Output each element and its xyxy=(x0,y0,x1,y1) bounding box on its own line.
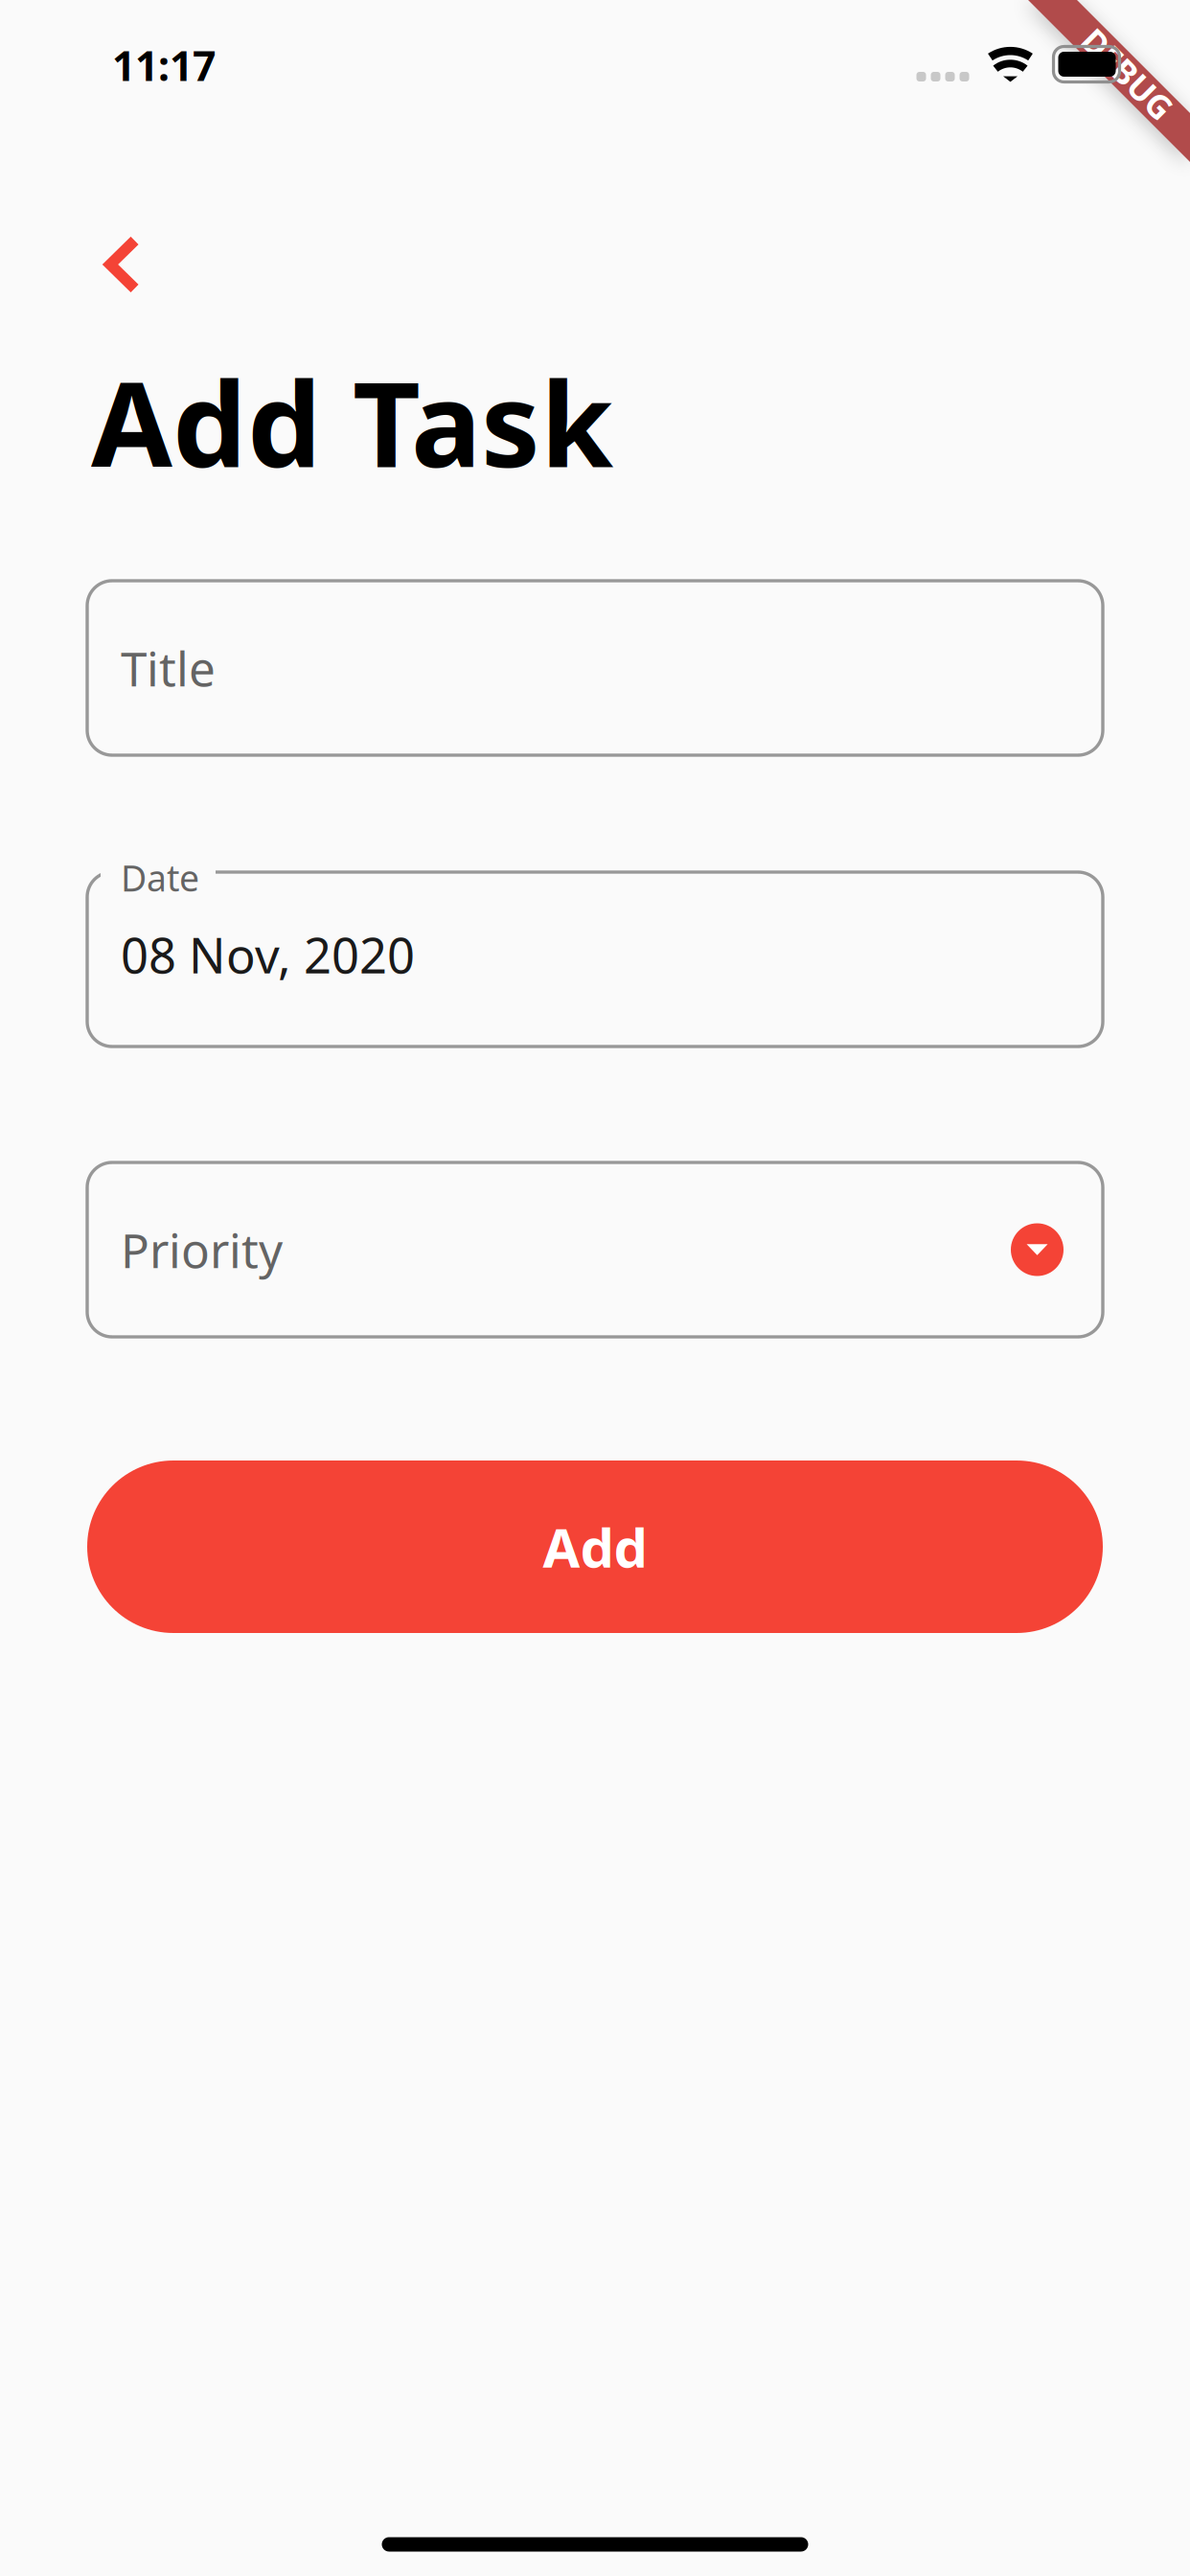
button[interactable]: 08 Nov, 2020 xyxy=(87,872,1103,1046)
staticText: DEBUG xyxy=(1071,52,1184,96)
button[interactable]: Priority xyxy=(87,1162,1103,1337)
button[interactable]: Title xyxy=(87,581,1103,755)
staticText: Add Task xyxy=(91,344,613,500)
staticText: 11:17 xyxy=(112,38,216,92)
staticText: 08 Nov, 2020 xyxy=(121,922,415,987)
staticText: Title xyxy=(121,637,216,699)
staticText: Add xyxy=(543,1511,647,1582)
button[interactable]: Add xyxy=(87,1460,1103,1633)
button[interactable]: Back xyxy=(70,206,183,323)
staticText: Date xyxy=(121,854,199,901)
button[interactable]: Choose priority xyxy=(1011,1223,1064,1276)
staticText: Priority xyxy=(121,1218,283,1281)
